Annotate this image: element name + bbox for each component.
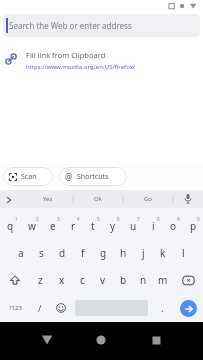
button[interactable]: Yes bbox=[23, 190, 73, 208]
button[interactable]: n bbox=[133, 266, 153, 294]
staticText: @ bbox=[65, 171, 73, 182]
staticText: 0 bbox=[197, 216, 200, 222]
button[interactable] bbox=[173, 294, 203, 322]
staticText: i bbox=[152, 219, 155, 233]
staticText: 1 bbox=[15, 216, 18, 222]
button[interactable]: p bbox=[183, 212, 203, 239]
button[interactable] bbox=[173, 266, 203, 294]
staticText: p bbox=[190, 219, 197, 233]
staticText: r bbox=[71, 219, 76, 233]
button[interactable]: i bbox=[143, 212, 163, 239]
button[interactable] bbox=[147, 331, 165, 349]
staticText: https://www.mozilla.org/en-US/firefox/ bbox=[26, 63, 136, 71]
staticText: e bbox=[50, 219, 56, 233]
button[interactable] bbox=[71, 294, 152, 322]
button[interactable]: @ bbox=[59, 167, 127, 186]
button[interactable]: e bbox=[42, 212, 63, 239]
staticText: v bbox=[100, 273, 106, 287]
button[interactable]: Go bbox=[123, 190, 173, 208]
button[interactable]: ?123 bbox=[0, 294, 30, 322]
staticText: x bbox=[59, 273, 65, 287]
staticText: y bbox=[110, 219, 116, 233]
staticText: j bbox=[142, 246, 145, 260]
button[interactable] bbox=[0, 266, 30, 294]
button[interactable] bbox=[38, 331, 56, 349]
staticText: z bbox=[38, 273, 43, 287]
staticText: ?123 bbox=[9, 304, 22, 312]
button[interactable]: Search the Web or enter address bbox=[3, 14, 200, 37]
staticText: w bbox=[28, 219, 36, 233]
button[interactable]: o bbox=[163, 212, 183, 239]
staticText: 5 bbox=[97, 216, 100, 222]
button[interactable]: s bbox=[31, 239, 52, 266]
staticText: t bbox=[91, 219, 95, 233]
staticText: / bbox=[38, 302, 42, 314]
button[interactable]: b bbox=[113, 266, 133, 294]
staticText: m bbox=[158, 273, 168, 287]
button[interactable]: z bbox=[30, 266, 51, 294]
staticText: f bbox=[81, 246, 85, 260]
button[interactable]: / bbox=[30, 294, 50, 322]
staticText: Ok bbox=[94, 195, 102, 203]
button[interactable]: Fill link from Clipboard bbox=[0, 44, 203, 78]
staticText: Shortcuts bbox=[77, 172, 109, 182]
staticText: h bbox=[120, 246, 127, 260]
button[interactable]: c bbox=[72, 266, 93, 294]
staticText: d bbox=[59, 246, 66, 260]
staticText: k bbox=[160, 246, 166, 260]
staticText: Go bbox=[144, 195, 152, 203]
button[interactable]: v bbox=[93, 266, 113, 294]
button[interactable] bbox=[92, 331, 110, 349]
button[interactable]: d bbox=[52, 239, 73, 266]
staticText: 2 bbox=[36, 216, 39, 222]
staticText: 3 bbox=[57, 216, 60, 222]
button[interactable]: h bbox=[113, 239, 133, 266]
staticText: Yes bbox=[43, 195, 53, 203]
staticText: a bbox=[18, 246, 24, 260]
button[interactable]: u bbox=[123, 212, 143, 239]
staticText: 9 bbox=[177, 216, 180, 222]
staticText: . bbox=[161, 301, 164, 315]
staticText: l bbox=[182, 246, 185, 260]
staticText: b bbox=[120, 273, 127, 287]
staticText: Search the Web or enter address bbox=[9, 20, 132, 31]
button[interactable]: j bbox=[133, 239, 153, 266]
button[interactable]: k bbox=[153, 239, 173, 266]
staticText: 6 bbox=[117, 216, 120, 222]
button[interactable]: . bbox=[152, 294, 173, 322]
button[interactable]: w bbox=[21, 212, 42, 239]
staticText: u bbox=[130, 219, 137, 233]
button[interactable]: q bbox=[0, 212, 21, 239]
button[interactable]: x bbox=[51, 266, 72, 294]
button[interactable]: a bbox=[10, 239, 31, 266]
button[interactable]: g bbox=[93, 239, 113, 266]
staticText: 4 bbox=[77, 216, 80, 222]
staticText: s bbox=[39, 246, 44, 260]
staticText: Fill link from Clipboard bbox=[26, 50, 106, 60]
staticText: 7 bbox=[137, 216, 140, 222]
button[interactable]: r bbox=[63, 212, 83, 239]
staticText: q bbox=[7, 219, 14, 233]
staticText: 8 bbox=[157, 216, 160, 222]
button[interactable]: m bbox=[153, 266, 173, 294]
button[interactable]: Scan bbox=[3, 167, 53, 186]
button[interactable]: f bbox=[73, 239, 93, 266]
staticText: o bbox=[170, 219, 177, 233]
button[interactable]: t bbox=[83, 212, 103, 239]
button[interactable]: l bbox=[173, 239, 193, 266]
button[interactable]: y bbox=[103, 212, 123, 239]
button[interactable]: Ok bbox=[73, 190, 123, 208]
staticText: g bbox=[100, 246, 107, 260]
staticText: n bbox=[140, 273, 147, 287]
staticText: Scan bbox=[21, 172, 37, 182]
button[interactable] bbox=[50, 294, 71, 322]
staticText: c bbox=[80, 273, 85, 287]
